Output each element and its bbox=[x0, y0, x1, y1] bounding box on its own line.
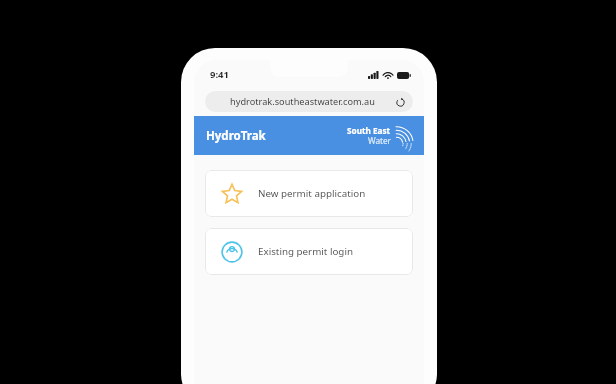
staticText: HydroTrak bbox=[206, 128, 266, 144]
button[interactable]: New permit application bbox=[205, 170, 413, 217]
staticText: 9:41 bbox=[210, 68, 229, 81]
button[interactable]: Existing permit login bbox=[205, 228, 413, 275]
staticText: Water bbox=[368, 135, 391, 146]
staticText: hydrotrak.southeastwater.com.au bbox=[230, 95, 375, 108]
staticText: Existing permit login bbox=[258, 245, 353, 258]
staticText: South East bbox=[347, 125, 391, 136]
staticText: New permit application bbox=[258, 187, 366, 200]
button[interactable]: Reload page bbox=[394, 96, 406, 108]
